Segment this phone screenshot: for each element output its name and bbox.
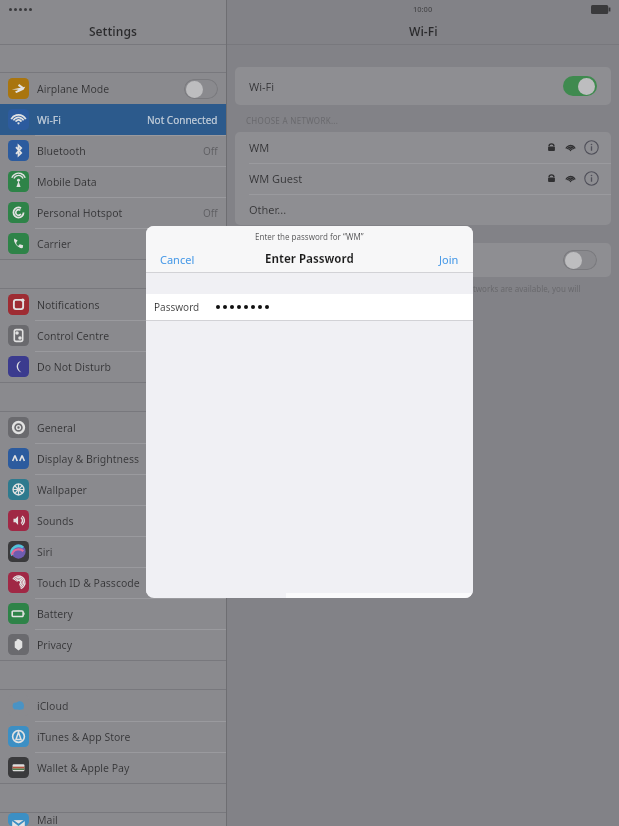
staticText: Bluetooth: [37, 144, 86, 158]
button[interactable]: Touch ID & Passcode: [0, 567, 226, 598]
button[interactable]: Toggle off: [563, 250, 597, 270]
button[interactable]: iTunes & App Store: [0, 721, 226, 752]
button[interactable]: Display & Brightness: [0, 443, 226, 474]
staticText: Siri: [37, 545, 53, 559]
button[interactable]: Do Not Disturb: [0, 351, 226, 382]
staticText: Settings: [89, 23, 137, 39]
staticText: Mobile Data: [37, 175, 97, 189]
button[interactable]: More info about WM: [584, 140, 599, 155]
button[interactable]: Wi-Fi: [235, 67, 611, 105]
staticText: Do Not Disturb: [37, 360, 112, 374]
button[interactable]: Siri: [0, 536, 226, 567]
staticText: Control Centre: [37, 329, 110, 343]
staticText: Cancel: [160, 252, 195, 267]
button[interactable]: WM Guest: [235, 163, 611, 194]
button[interactable]: Carrier: [0, 228, 226, 259]
button[interactable]: WM: [235, 132, 611, 163]
staticText: Personal Hotspot: [37, 206, 123, 220]
staticText: WM Guest: [249, 171, 303, 186]
staticText: Off: [203, 206, 218, 220]
button[interactable]: Mobile Data: [0, 166, 226, 197]
button[interactable]: Mail: [0, 813, 226, 826]
button[interactable]: More info about WM Guest: [584, 171, 599, 186]
staticText: Other...: [249, 202, 287, 217]
staticText: Sounds: [37, 514, 74, 528]
staticText: Carrier: [37, 237, 72, 251]
staticText: Not Connected: [147, 113, 218, 127]
staticText: Display & Brightness: [37, 452, 140, 466]
button[interactable]: Ask to Join Networks: [235, 243, 611, 277]
staticText: iCloud: [37, 699, 69, 713]
staticText: Battery: [37, 607, 73, 621]
button[interactable]: Airplane Mode: [0, 73, 226, 104]
staticText: Wi-Fi: [37, 113, 62, 127]
staticText: Off: [203, 144, 218, 158]
staticText: Wallpaper: [37, 483, 87, 497]
button[interactable]: Join: [433, 249, 465, 270]
button[interactable]: Toggle off: [184, 79, 218, 99]
button[interactable]: Sounds: [0, 505, 226, 536]
button[interactable]: Wi-Fi: [0, 104, 226, 135]
staticText: Privacy: [37, 638, 73, 652]
staticText: CHOOSE A NETWORK...: [246, 115, 339, 126]
button[interactable]: iCloud: [0, 690, 226, 721]
staticText: iTunes & App Store: [37, 730, 131, 744]
staticText: Enter Password: [265, 251, 354, 267]
staticText: 10:00: [413, 4, 433, 14]
button[interactable]: Privacy: [0, 629, 226, 660]
staticText: Known networks will be joined automatica…: [246, 283, 600, 305]
staticText: Wi-Fi: [409, 23, 438, 39]
staticText: General: [37, 421, 76, 435]
staticText: Airplane Mode: [37, 82, 110, 96]
staticText: Join: [439, 252, 459, 267]
button[interactable]: Battery: [0, 598, 226, 629]
staticText: WM: [249, 140, 270, 155]
button[interactable]: Cancel: [154, 249, 201, 270]
staticText: Enter the password for “WM”: [255, 231, 364, 242]
staticText: Mail: [37, 813, 58, 826]
button[interactable]: Other...: [235, 194, 611, 225]
staticText: Wallet & Apple Pay: [37, 761, 130, 775]
button[interactable]: General: [0, 412, 226, 443]
staticText: Password: [154, 300, 200, 314]
button[interactable]: Bluetooth: [0, 135, 226, 166]
button[interactable]: Wallet & Apple Pay: [0, 752, 226, 783]
button[interactable]: Control Centre: [0, 320, 226, 351]
button[interactable]: Personal Hotspot: [0, 197, 226, 228]
button[interactable]: Password: [146, 294, 473, 320]
button[interactable]: Toggle on: [563, 76, 597, 96]
staticText: Ask to Join Networks: [249, 253, 356, 268]
staticText: Wi-Fi: [249, 79, 275, 94]
button[interactable]: Wallpaper: [0, 474, 226, 505]
button[interactable]: Notifications: [0, 289, 226, 320]
staticText: Notifications: [37, 298, 100, 312]
staticText: Touch ID & Passcode: [37, 576, 140, 590]
